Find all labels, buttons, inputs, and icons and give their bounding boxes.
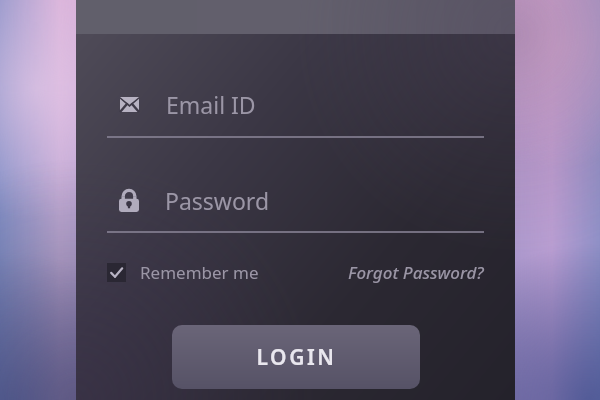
staticText: Forgot Password? [348,261,484,284]
other: Password [119,189,139,212]
staticText: LOGIN [256,343,337,372]
other: Email [120,97,139,112]
staticText: Email ID [166,89,256,120]
button[interactable]: LOGIN [172,325,420,389]
other: Remember me checkbox [107,263,126,282]
staticText: Password [165,185,270,216]
button[interactable]: Forgot Password? [348,261,484,284]
staticText: Remember me [140,261,259,284]
button[interactable]: Remember me checkbox [107,261,259,284]
button[interactable]: Email [107,87,484,121]
button[interactable]: Password [107,183,484,217]
